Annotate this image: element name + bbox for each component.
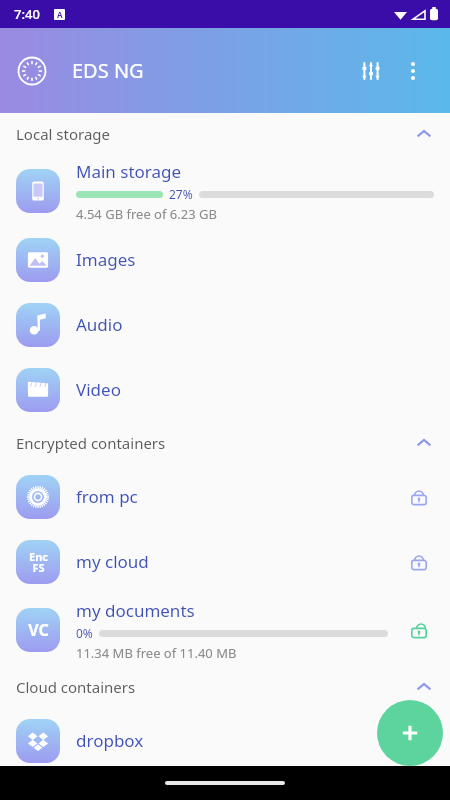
staticText: from pc	[76, 485, 138, 508]
button[interactable]: Add container	[377, 700, 443, 766]
button[interactable]: Local storage	[0, 113, 450, 155]
button[interactable]: Locked	[404, 547, 434, 577]
button[interactable]: EDS logo	[16, 55, 48, 87]
button[interactable]: Locked	[404, 482, 434, 512]
staticText: Video	[76, 378, 121, 401]
staticText: 0%	[76, 625, 93, 641]
button[interactable]: Images	[0, 227, 450, 292]
button[interactable]: Encrypted containers	[0, 422, 450, 464]
staticText: my documents	[76, 599, 195, 622]
staticText: Cloud containers	[16, 677, 136, 697]
staticText: Audio	[76, 313, 123, 336]
button[interactable]: from pc	[0, 464, 450, 529]
staticText: 27%	[169, 186, 193, 202]
button[interactable]: Main storage	[0, 155, 450, 227]
staticText: EDS NG	[72, 57, 144, 84]
button[interactable]: Unlocked	[404, 615, 434, 645]
button[interactable]: VC	[0, 594, 450, 666]
staticText: Enc FS	[29, 549, 48, 576]
staticText: Images	[76, 248, 136, 271]
staticText: Main storage	[76, 160, 182, 183]
staticText: my cloud	[76, 550, 149, 573]
button[interactable]: Enc FS	[0, 529, 450, 594]
button[interactable]: Sort	[350, 50, 392, 92]
staticText: Local storage	[16, 124, 110, 144]
button[interactable]: Video	[0, 357, 450, 422]
button[interactable]: Cloud containers	[0, 666, 450, 708]
staticText: VC	[28, 619, 49, 641]
staticText: dropbox	[76, 729, 144, 752]
staticText: Encrypted containers	[16, 433, 166, 453]
staticText: 11.34 MB free of 11.40 MB	[76, 644, 237, 662]
staticText: 4.54 GB free of 6.23 GB	[76, 205, 217, 223]
staticText: 7:40	[14, 5, 40, 23]
button[interactable]: Audio	[0, 292, 450, 357]
button[interactable]: dropbox	[0, 708, 450, 773]
staticText: A	[57, 9, 63, 20]
button[interactable]: More options	[392, 50, 434, 92]
